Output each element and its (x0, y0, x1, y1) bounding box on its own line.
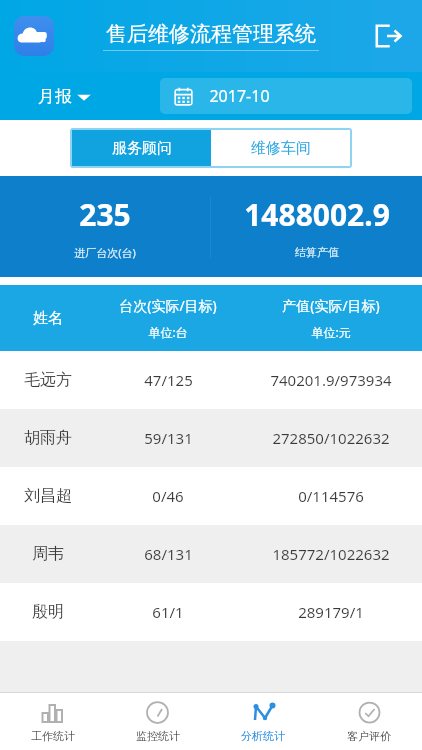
button[interactable]: 监控统计 (105, 692, 210, 750)
staticText: 售后维修流程管理系统 (106, 21, 316, 47)
button[interactable]: 235 (0, 194, 210, 260)
button[interactable]: 月报 (38, 86, 92, 107)
button[interactable]: 胡雨舟 (0, 409, 422, 467)
staticText: 单位:台 (148, 324, 188, 340)
button[interactable]: 毛远方 (0, 351, 422, 409)
staticText: 毛远方 (24, 370, 72, 390)
button[interactable]: App logo (14, 16, 54, 56)
staticText: 272850/1022632 (272, 428, 390, 448)
button[interactable]: Logout (370, 19, 404, 53)
button[interactable]: 工作统计 (0, 692, 105, 750)
staticText: 47/125 (144, 370, 193, 390)
staticText: 周韦 (32, 544, 64, 564)
staticText: 结算产值 (295, 245, 339, 259)
staticText: 740201.9/973934 (270, 370, 392, 390)
staticText: 月报 (38, 86, 72, 107)
staticText: 2017-10 (209, 85, 270, 107)
staticText: 185772/1022632 (272, 544, 390, 564)
button[interactable]: 维修车间 (211, 130, 350, 166)
staticText: 分析统计 (241, 729, 285, 743)
staticText: 监控统计 (136, 729, 180, 743)
staticText: 1488002.9 (244, 194, 390, 235)
button[interactable]: 客户评价 (316, 692, 422, 750)
staticText: 235 (79, 194, 131, 235)
staticText: 台次(实际/目标) (119, 296, 217, 315)
button[interactable]: 2017-10 (160, 78, 412, 114)
staticText: 单位:元 (311, 324, 351, 340)
staticText: 59/131 (144, 428, 193, 448)
button[interactable]: 殷明 (0, 583, 422, 641)
staticText: 胡雨舟 (24, 428, 72, 448)
staticText: 进厂台次(台) (74, 245, 136, 260)
staticText: 殷明 (32, 602, 64, 622)
staticText: 维修车间 (251, 139, 311, 158)
staticText: 产值(实际/目标) (282, 296, 380, 315)
button[interactable]: 刘昌超 (0, 467, 422, 525)
staticText: 0/114576 (298, 486, 364, 506)
button[interactable]: 1488002.9 (211, 194, 422, 259)
staticText: 0/46 (152, 486, 184, 506)
button[interactable]: 分析统计 (210, 692, 316, 750)
staticText: 刘昌超 (24, 486, 72, 506)
button[interactable]: 服务顾问 (72, 130, 211, 166)
staticText: 61/1 (152, 602, 184, 622)
staticText: 服务顾问 (112, 139, 172, 158)
staticText: 客户评价 (347, 729, 391, 743)
button[interactable]: 周韦 (0, 525, 422, 583)
staticText: 289179/1 (298, 602, 364, 622)
staticText: 工作统计 (31, 729, 75, 743)
staticText: 68/131 (144, 544, 193, 564)
staticText: 姓名 (33, 309, 63, 328)
